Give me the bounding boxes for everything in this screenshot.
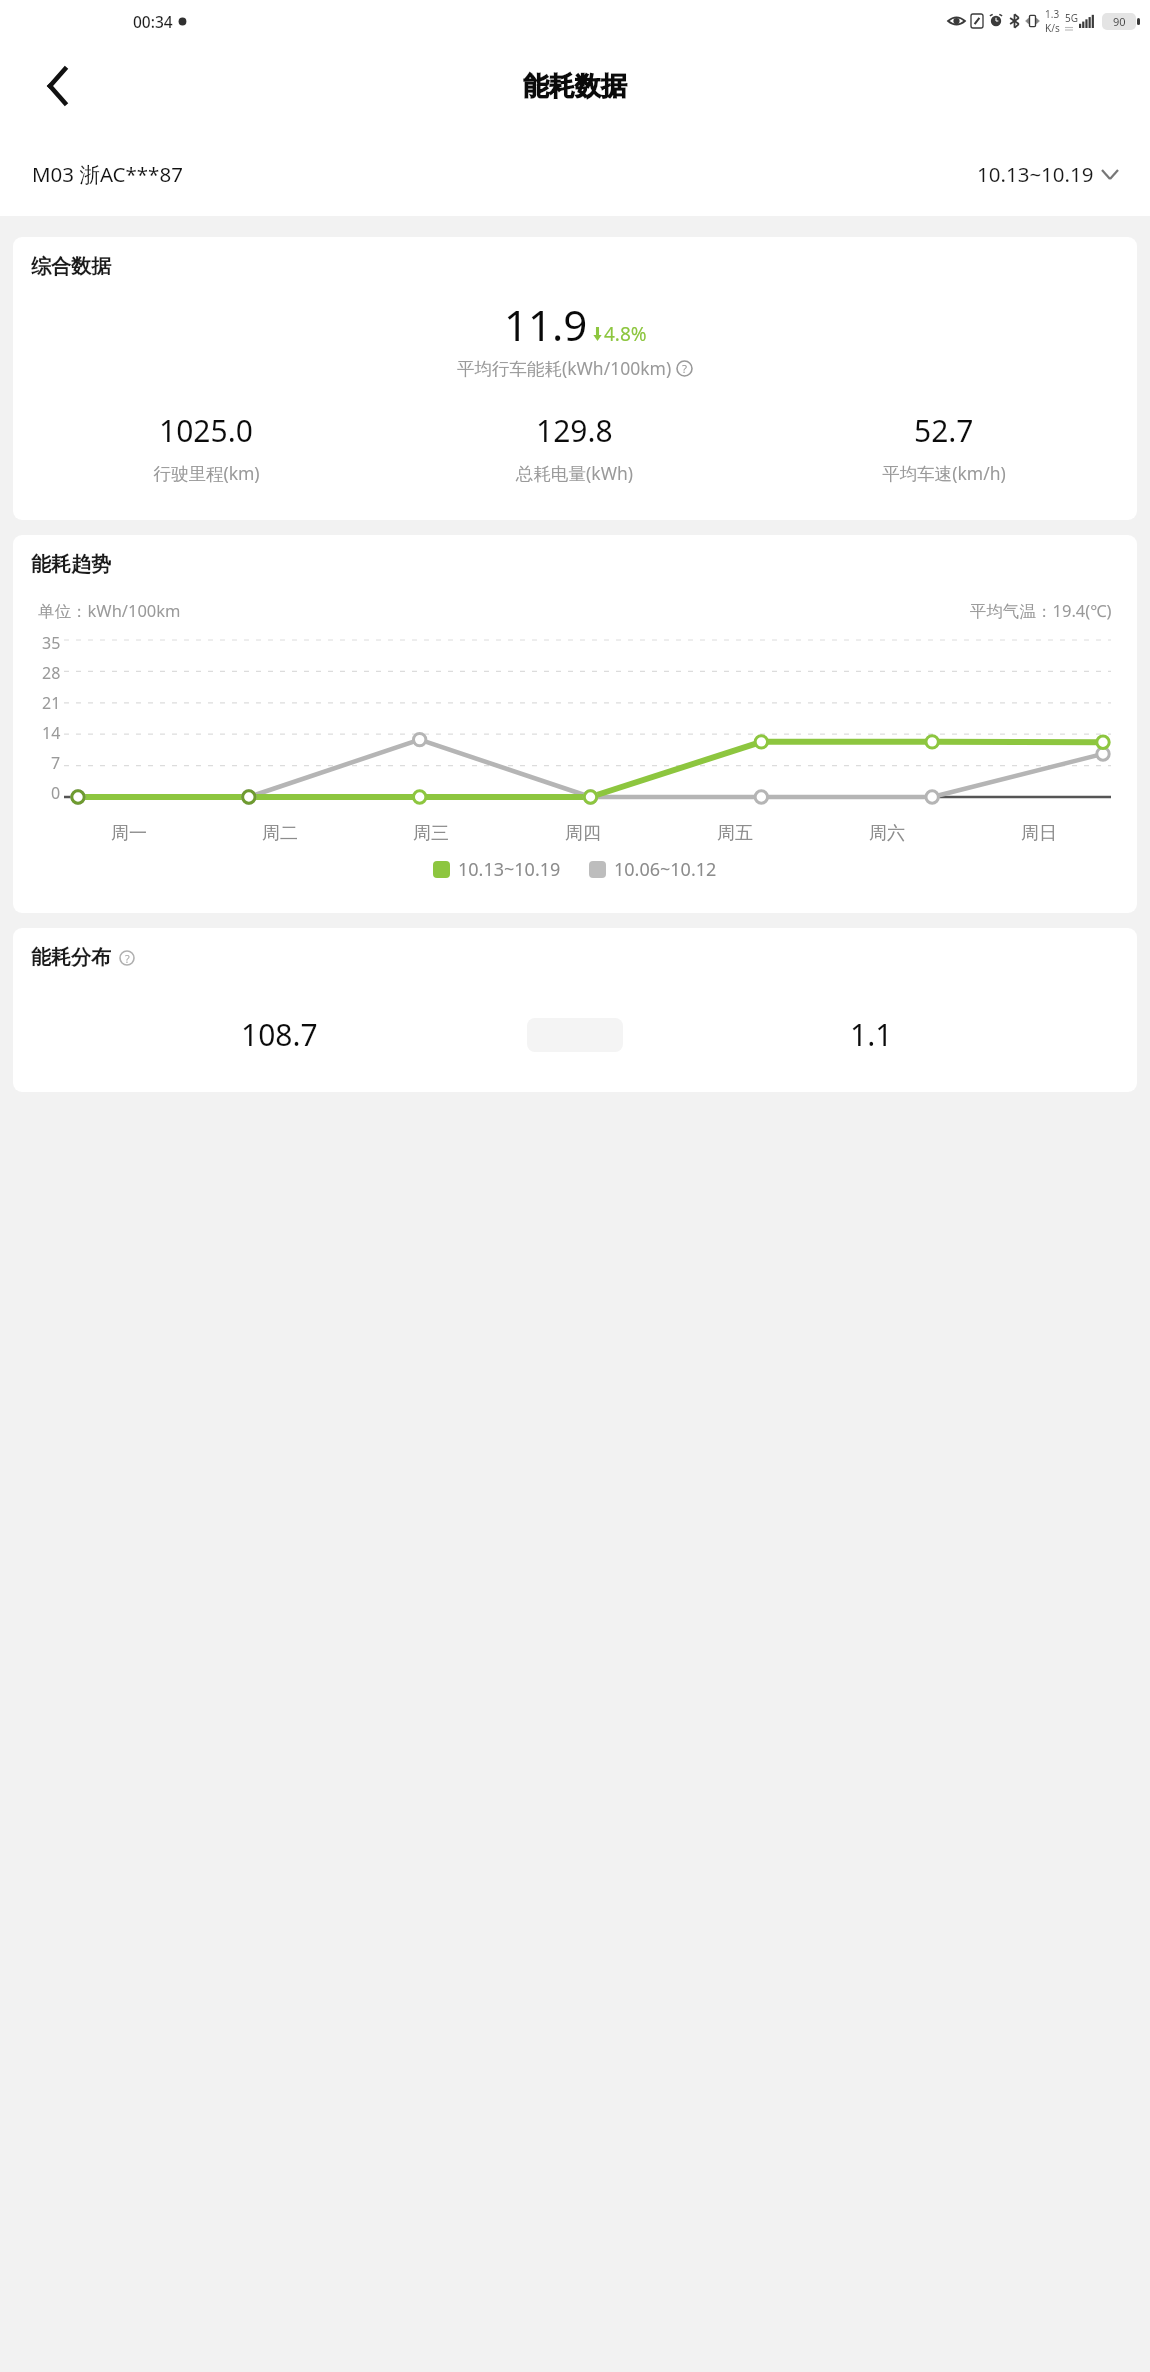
button[interactable]: 10.06~10.12 [589, 857, 717, 882]
staticText: 周日 [1021, 822, 1057, 845]
staticText: 能耗趋势 [31, 552, 111, 577]
staticText: 周四 [565, 822, 601, 845]
staticText: 行驶里程(km) [153, 461, 260, 485]
staticText: 平均气温：19.4(℃) [970, 599, 1112, 622]
staticText: 平均车速(km/h) [882, 461, 1006, 485]
staticText: 1025.0 [159, 410, 253, 451]
staticText: 周一 [111, 822, 147, 845]
staticText: 总耗电量(kWh) [516, 461, 633, 485]
staticText: 周五 [717, 822, 753, 845]
staticText: 28 [42, 662, 61, 684]
staticText: 1.1 [850, 1014, 893, 1055]
staticText: 129.8 [536, 410, 613, 451]
staticText: 1.3 [1045, 7, 1060, 21]
button[interactable]: Back [34, 62, 82, 110]
staticText: ? [125, 951, 130, 966]
button[interactable]: 10.13~10.19 [433, 857, 561, 882]
staticText: 90 [1113, 14, 1126, 29]
staticText: 周二 [262, 822, 298, 845]
staticText: 21 [42, 692, 61, 714]
staticText: 周三 [413, 822, 449, 845]
staticText: 10.13~10.19 [458, 857, 561, 882]
button[interactable]: 能耗分布 [13, 928, 1137, 1092]
button[interactable]: 综合数据 [13, 237, 1137, 520]
staticText: 平均行车能耗(kWh/100km) [457, 356, 672, 380]
staticText: 周六 [869, 822, 905, 845]
staticText: 4.8% [604, 321, 647, 347]
staticText: 能耗数据 [523, 70, 627, 103]
staticText: M03 浙AC***87 [32, 160, 183, 188]
staticText: ? [682, 361, 688, 377]
staticText: 108.7 [241, 1014, 318, 1055]
staticText: 7 [51, 752, 61, 774]
staticText: 11.9 [504, 296, 588, 353]
staticText: 能耗分布 [31, 945, 111, 970]
staticText: 35 [42, 632, 61, 654]
button[interactable]: 10.13~10.19 [977, 160, 1118, 188]
staticText: 14 [42, 722, 61, 744]
staticText: K/s [1045, 21, 1060, 35]
staticText: 5G [1065, 11, 1078, 25]
staticText: 0 [51, 782, 61, 804]
staticText: 10.06~10.12 [614, 857, 717, 882]
staticText: 00:34 [133, 11, 173, 32]
button[interactable]: 能耗趋势 [13, 535, 1137, 913]
staticText: 综合数据 [31, 254, 111, 279]
staticText: 单位：kWh/100km [38, 599, 181, 622]
staticText: 10.13~10.19 [977, 160, 1094, 188]
staticText: 52.7 [914, 410, 974, 451]
